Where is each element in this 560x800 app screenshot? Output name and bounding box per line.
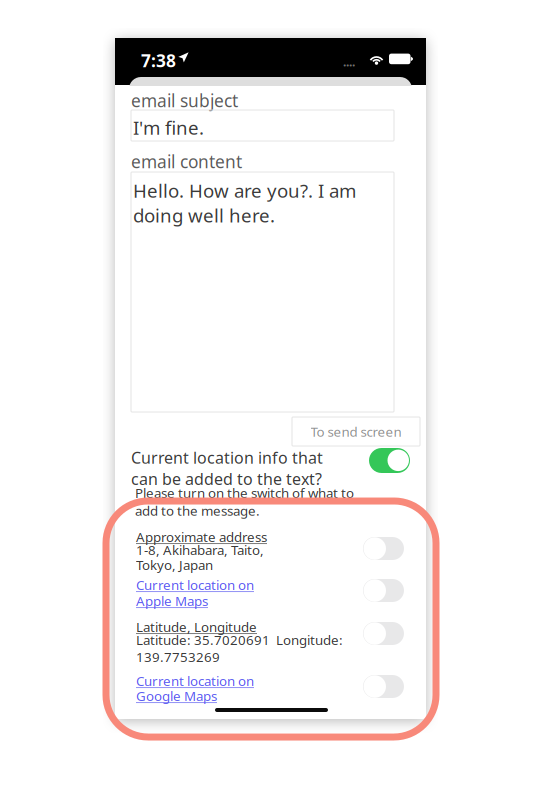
staticText: 1-8, Akihabara, Taito, [136, 541, 264, 559]
button[interactable]: Current location on [0, 0, 560, 800]
staticText: 7:38 [141, 49, 176, 72]
button[interactable]: Current location on Apple Maps [363, 579, 404, 602]
button[interactable]: Current location info [369, 448, 410, 473]
staticText: Hello. How are you?. I am doing well her… [133, 178, 356, 228]
staticText: 139.7753269 [136, 648, 220, 666]
button[interactable]: Latitude, Longitude [363, 622, 404, 645]
button[interactable]: To send screen [292, 417, 420, 446]
staticText: To send screen [310, 423, 401, 440]
staticText: Apple Maps [136, 592, 208, 610]
staticText: Latitude, Longitude [136, 618, 257, 636]
button[interactable]: Current location on [0, 0, 560, 800]
staticText: Latitude: 35.7020691 Longitude: [136, 631, 343, 649]
button[interactable]: Current location on Google Maps [363, 675, 404, 698]
staticText: I'm fine. [133, 115, 204, 140]
staticText: Please turn on the switch of what to add… [135, 484, 354, 519]
staticText: Current location on [136, 672, 254, 690]
staticText: Current location info that can be added … [131, 447, 323, 489]
staticText: email subject [131, 89, 238, 112]
staticText: Current location on [136, 576, 254, 594]
staticText: Google Maps [136, 687, 217, 705]
staticText: email content [131, 150, 242, 173]
button[interactable]: Approximate address [363, 537, 404, 560]
staticText: Approximate address [136, 528, 267, 546]
staticText: .... [343, 54, 355, 70]
staticText: Tokyo, Japan [136, 556, 213, 574]
